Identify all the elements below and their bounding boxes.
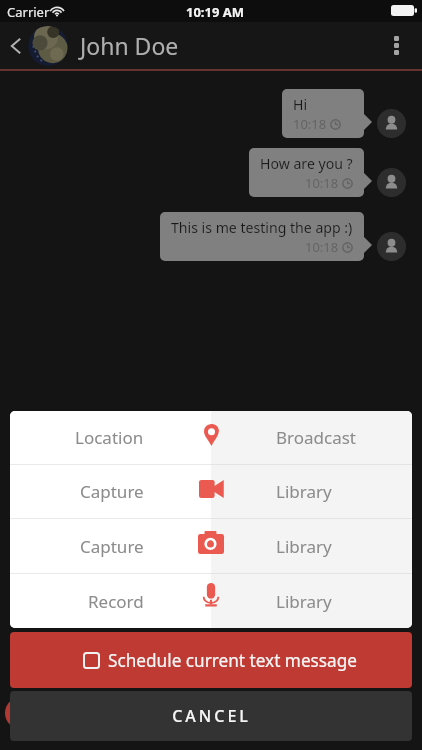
button[interactable]: Sender avatar	[377, 232, 406, 261]
staticText: Schedule current text message	[108, 649, 357, 672]
button[interactable]: Broadcast	[211, 411, 412, 464]
staticText: John Doe	[80, 30, 179, 61]
button[interactable]: Back	[0, 22, 28, 69]
button[interactable]: More options	[371, 22, 422, 69]
button[interactable]: New message	[5, 697, 37, 729]
button[interactable]: Library	[211, 519, 412, 573]
button[interactable]: Record	[10, 574, 211, 628]
staticText: Broadcast	[276, 426, 356, 449]
staticText: 10:19 AM	[186, 3, 245, 21]
staticText: Capture	[80, 480, 144, 503]
button[interactable]: Sender avatar	[377, 168, 406, 197]
button[interactable]: How are you ?	[249, 148, 364, 197]
staticText: 10:18	[293, 115, 327, 133]
staticText: CANCEL	[172, 705, 251, 727]
button[interactable]: Capture	[10, 465, 211, 518]
staticText: How are you ?	[260, 154, 353, 173]
staticText: Hi	[293, 95, 308, 114]
button[interactable]: Library	[211, 465, 412, 518]
button[interactable]: Hi	[282, 89, 364, 138]
button[interactable]: This is me testing the app :)	[160, 212, 364, 261]
staticText: Library	[276, 590, 332, 613]
button[interactable]: Sender avatar	[377, 109, 406, 138]
button[interactable]: Capture	[10, 519, 211, 573]
staticText: Location	[75, 426, 144, 449]
button[interactable]: Schedule current text message	[10, 632, 412, 688]
staticText: Record	[88, 590, 144, 613]
button[interactable]: Library	[211, 574, 412, 628]
staticText: Library	[276, 480, 332, 503]
staticText: 10:18	[305, 174, 339, 192]
staticText: Capture	[80, 535, 144, 558]
button[interactable]: Contact avatar	[28, 26, 68, 66]
staticText: This is me testing the app :)	[171, 218, 353, 237]
staticText: Library	[276, 535, 332, 558]
button[interactable]: Location	[10, 411, 211, 464]
button[interactable]: CANCEL	[10, 691, 412, 741]
staticText: 10:18	[305, 238, 339, 256]
staticText: Carrier	[7, 3, 50, 21]
